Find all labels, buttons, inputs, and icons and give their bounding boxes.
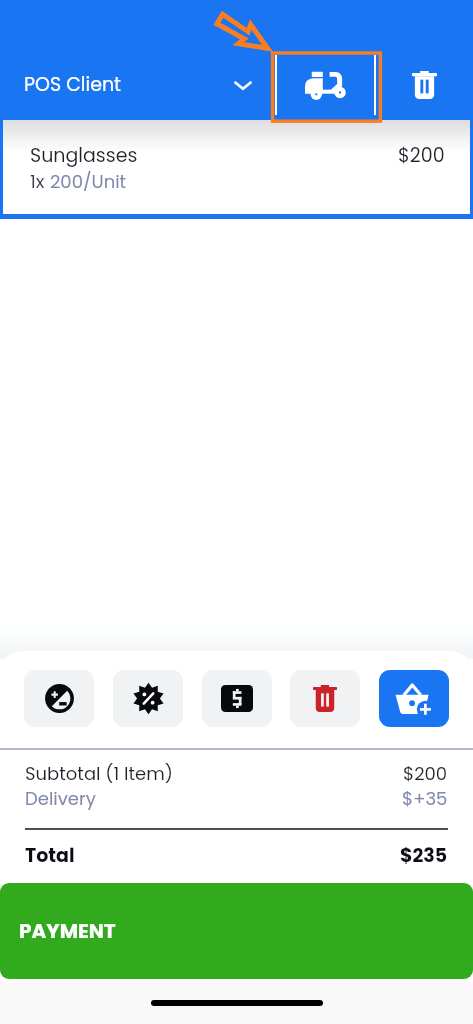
button[interactable]: Clear cart	[290, 670, 360, 727]
staticText: $+35	[402, 786, 448, 811]
button[interactable]: POS Client	[0, 49, 275, 120]
button[interactable]: Delete order	[376, 49, 473, 120]
staticText: Total	[25, 842, 75, 869]
button[interactable]: Discount	[113, 670, 183, 727]
staticText: POS Client	[24, 71, 122, 98]
staticText: Sunglasses	[30, 142, 138, 169]
button[interactable]: Cash	[202, 670, 272, 727]
staticText: 200/Unit	[50, 169, 127, 194]
staticText: $200	[398, 142, 445, 169]
staticText: Delivery	[25, 786, 96, 811]
staticText: PAYMENT	[19, 917, 116, 945]
staticText: 1x	[30, 169, 50, 194]
button[interactable]: PAYMENT	[0, 883, 473, 979]
staticText: $200	[403, 761, 448, 786]
button[interactable]: Delivery	[277, 49, 374, 120]
staticText: Subtotal (1 Item)	[25, 761, 173, 786]
button[interactable]: Sunglasses	[3, 120, 470, 214]
button[interactable]: Add item	[379, 670, 449, 727]
button[interactable]: Exposure	[24, 670, 94, 727]
staticText: $235	[400, 842, 448, 869]
